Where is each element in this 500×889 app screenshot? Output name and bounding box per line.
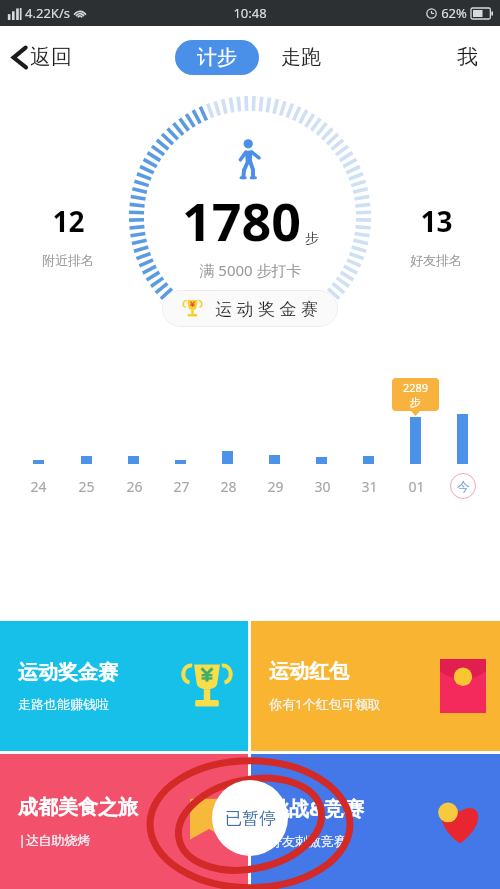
button[interactable]: 已暂停 [212,780,288,856]
staticText: 已暂停 [225,808,276,829]
staticText: |达自助烧烤 [18,831,91,849]
staticText: 30 [314,477,331,496]
staticText: 挑战&竞赛 [269,795,364,822]
staticText: 12 [52,202,85,240]
staticText: 27 [173,477,190,496]
staticText: 好友刺激竞赛 [269,833,347,849]
staticText: 29 [267,477,284,496]
staticText: 满 5000 步打卡 [199,260,302,280]
staticText: 2289步 [398,380,433,409]
staticText: 4.22K/s [25,4,70,22]
staticText: 运动红包 [269,659,349,684]
button[interactable]: 成都美食之旅 [0,754,248,889]
staticText: 1780 [182,185,301,256]
button[interactable]: 挑战&竞赛 [251,754,500,889]
staticText: 13 [420,202,453,240]
staticText: 25 [78,477,95,496]
staticText: 运动奖金赛 [18,660,118,685]
staticText: 26 [126,477,143,496]
staticText: 今 [457,478,470,494]
staticText: 你有1个红包可领取 [269,695,381,713]
staticText: 01 [408,477,425,496]
button[interactable]: 我 [453,40,482,74]
staticText: 我 [457,44,478,70]
button[interactable]: 返回 [10,44,72,70]
button[interactable]: 走跑 [277,39,325,76]
staticText: 走跑 [281,45,321,70]
button[interactable]: 运 动 奖 金 赛 [162,290,338,327]
staticText: 返回 [30,44,72,70]
button[interactable]: 运动奖金赛 [0,621,248,751]
staticText: 好友排名 [410,252,462,268]
button[interactable]: 计步 [175,40,259,75]
staticText: 附近排名 [42,252,94,268]
staticText: 运 动 奖 金 赛 [215,297,318,320]
staticText: 28 [220,477,237,496]
staticText: 走路也能赚钱啦 [18,696,109,712]
staticText: 计步 [197,45,237,70]
staticText: 62% [441,4,467,22]
staticText: 成都美食之旅 [18,795,138,820]
staticText: 24 [30,477,47,496]
button[interactable]: 运动红包 [251,621,500,751]
staticText: 31 [361,477,378,496]
staticText: 步 [305,230,319,248]
staticText: 10:48 [233,4,267,22]
